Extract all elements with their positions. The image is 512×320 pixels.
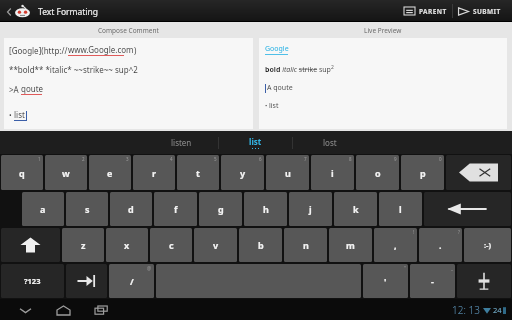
staticText: o bbox=[375, 167, 381, 179]
staticText: 4 bbox=[170, 156, 173, 162]
button[interactable]: SUBMIT bbox=[453, 0, 506, 22]
staticText: t bbox=[196, 167, 200, 179]
button[interactable]: - bbox=[410, 264, 455, 298]
button[interactable]: f bbox=[154, 192, 197, 226]
button[interactable]: a bbox=[22, 192, 64, 226]
button[interactable]: lost bbox=[293, 131, 366, 154]
staticText: **bold** *italic* ~~strike~~ sup^2 bbox=[9, 64, 138, 75]
button[interactable]: Google bbox=[260, 39, 506, 128]
staticText: r bbox=[152, 167, 157, 179]
button[interactable]: l bbox=[379, 192, 422, 226]
button[interactable]: Change input method bbox=[457, 264, 511, 298]
staticText: i bbox=[331, 167, 334, 179]
staticText: v bbox=[213, 239, 219, 251]
staticText: 3 bbox=[126, 156, 129, 162]
button[interactable]: v bbox=[194, 228, 237, 262]
staticText: 12: 13 bbox=[452, 303, 480, 317]
staticText: @ bbox=[147, 265, 152, 271]
button[interactable]: :-) bbox=[464, 228, 511, 262]
staticText: a bbox=[40, 203, 46, 215]
staticText: 7 bbox=[304, 156, 307, 162]
button[interactable]: c bbox=[150, 228, 192, 262]
button[interactable]: Recent apps bbox=[88, 301, 114, 319]
button[interactable]: listen bbox=[145, 131, 218, 154]
button[interactable]: . bbox=[419, 228, 462, 262]
staticText: 8 bbox=[349, 156, 352, 162]
staticText: ' bbox=[384, 275, 387, 287]
staticText: m bbox=[346, 239, 355, 251]
button[interactable]: PARENT bbox=[399, 0, 452, 22]
staticText: _ bbox=[451, 265, 453, 271]
button[interactable]: Google bbox=[265, 44, 289, 54]
button[interactable]: d bbox=[110, 192, 152, 226]
button[interactable]: Backspace bbox=[446, 155, 511, 190]
staticText: list bbox=[249, 136, 262, 147]
staticText: g bbox=[218, 203, 224, 215]
button[interactable]: Tab bbox=[66, 264, 107, 298]
button[interactable]: x bbox=[106, 228, 148, 262]
button[interactable]: j bbox=[289, 192, 332, 226]
button[interactable]: 12: 13 bbox=[452, 303, 506, 317]
button[interactable]: r bbox=[133, 155, 175, 190]
button[interactable]: Hide keyboard bbox=[12, 301, 38, 319]
staticText: , bbox=[394, 239, 397, 251]
button[interactable]: p bbox=[401, 155, 444, 190]
staticText: • bbox=[9, 111, 14, 121]
button[interactable]: o bbox=[356, 155, 399, 190]
staticText: - bbox=[431, 275, 434, 287]
staticText: 1 bbox=[38, 156, 41, 162]
button[interactable]: s bbox=[66, 192, 108, 226]
staticText: PARENT bbox=[419, 7, 447, 16]
staticText: y bbox=[240, 167, 246, 179]
button[interactable]: n bbox=[284, 228, 327, 262]
staticText: lost bbox=[323, 137, 337, 148]
button[interactable]: h bbox=[244, 192, 287, 226]
button[interactable]: b bbox=[239, 228, 282, 262]
staticText: 9 bbox=[394, 156, 397, 162]
button[interactable]: Enter bbox=[424, 192, 511, 226]
button[interactable]: Home bbox=[50, 301, 76, 319]
button[interactable]: t bbox=[177, 155, 219, 190]
button[interactable]: g bbox=[199, 192, 242, 226]
staticText: listen bbox=[171, 137, 192, 148]
button[interactable]: m bbox=[329, 228, 372, 262]
staticText: ) bbox=[134, 45, 137, 56]
button[interactable]: Text Formating bbox=[4, 5, 101, 18]
button[interactable]: , bbox=[374, 228, 417, 262]
staticText: 24 bbox=[493, 305, 502, 315]
staticText: ? bbox=[458, 229, 460, 235]
button[interactable]: Shift bbox=[1, 228, 60, 262]
staticText: k bbox=[353, 203, 359, 215]
staticText: SUBMIT bbox=[473, 7, 501, 16]
button[interactable]: ' bbox=[363, 264, 408, 298]
staticText: Compose Comment bbox=[98, 26, 159, 35]
button[interactable]: e bbox=[89, 155, 131, 190]
button[interactable]: u bbox=[266, 155, 309, 190]
staticText: bold italic strike sup2 bbox=[265, 64, 334, 74]
staticText: h bbox=[263, 203, 269, 215]
staticText: x bbox=[124, 239, 130, 251]
button[interactable]: [Google](http:// bbox=[5, 39, 252, 128]
button[interactable]: z bbox=[62, 228, 104, 262]
staticText: 2 bbox=[82, 156, 85, 162]
staticText: [Google](http:// bbox=[9, 45, 68, 56]
button[interactable]: ?123 bbox=[1, 264, 64, 298]
button[interactable]: list bbox=[219, 131, 292, 154]
button[interactable]: k bbox=[334, 192, 377, 226]
staticText: ?123 bbox=[24, 276, 41, 286]
button[interactable]: q bbox=[1, 155, 43, 190]
button[interactable]: / bbox=[109, 264, 154, 298]
button[interactable]: y bbox=[221, 155, 264, 190]
staticText: p bbox=[420, 167, 426, 179]
staticText: s bbox=[85, 203, 90, 215]
button[interactable]: i bbox=[311, 155, 354, 190]
staticText: 6 bbox=[259, 156, 262, 162]
staticText: :-) bbox=[484, 240, 492, 250]
staticText: d bbox=[128, 203, 134, 215]
button[interactable]: w bbox=[45, 155, 87, 190]
staticText: • bbox=[265, 102, 269, 110]
staticText: u bbox=[285, 167, 291, 179]
staticText: " bbox=[404, 265, 406, 271]
staticText: . bbox=[439, 239, 442, 251]
